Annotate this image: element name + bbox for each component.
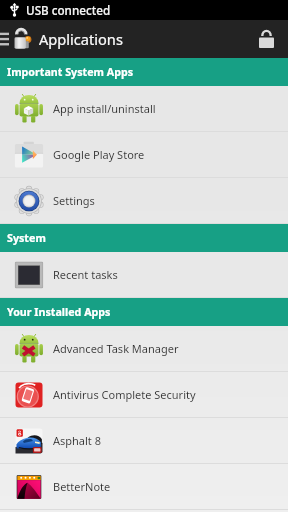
staticText: Important System Apps: [7, 65, 134, 80]
button[interactable]: Google Play Store: [0, 132, 288, 178]
staticText: USB connected: [26, 2, 111, 18]
staticText: System: [7, 231, 46, 246]
button[interactable]: Settings: [0, 178, 288, 224]
staticText: App install/uninstall: [53, 101, 156, 116]
button[interactable]: Antivirus Complete Security: [0, 372, 288, 418]
staticText: Applications: [39, 29, 123, 49]
button[interactable]: App install/uninstall: [0, 86, 288, 132]
button[interactable]: Recent tasks: [0, 252, 288, 298]
staticText: Advanced Task Manager: [53, 341, 179, 356]
button[interactable]: Advanced Task Manager: [0, 326, 288, 372]
staticText: Google Play Store: [53, 147, 145, 162]
staticText: Antivirus Complete Security: [53, 387, 196, 402]
button[interactable]: Open navigation drawer: [0, 20, 11, 58]
button[interactable]: Lock: [252, 20, 281, 58]
staticText: BetterNote: [53, 479, 111, 494]
staticText: Recent tasks: [53, 267, 118, 282]
staticText: Settings: [53, 193, 95, 208]
staticText: Your Installed Apps: [7, 305, 111, 320]
button[interactable]: Asphalt 8: [0, 418, 288, 464]
button[interactable]: BetterNote: [0, 464, 288, 510]
staticText: Asphalt 8: [53, 433, 101, 448]
